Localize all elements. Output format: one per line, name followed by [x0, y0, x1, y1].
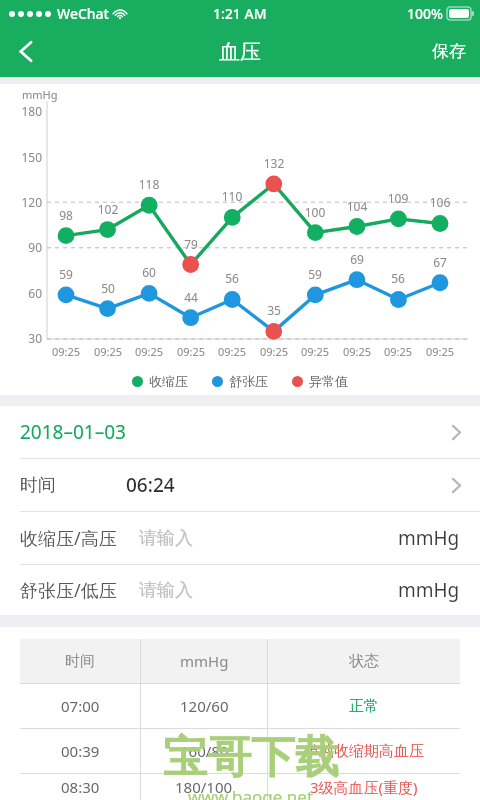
staticText: 98 [48, 207, 84, 223]
staticText: 60 [131, 264, 167, 280]
staticText: 60 [16, 285, 42, 301]
staticText: 100 [297, 204, 333, 220]
staticText: 44 [173, 289, 209, 305]
staticText: 106 [422, 194, 458, 210]
staticText: 180/100 [175, 777, 233, 797]
staticText: 59 [48, 266, 84, 282]
staticText: 09:25 [337, 344, 377, 359]
staticText: 收缩压/高压 [20, 526, 117, 551]
button[interactable]: 2018–01–03 [0, 406, 480, 458]
staticText: 59 [297, 266, 333, 282]
staticText: 舒张压/低压 [20, 578, 117, 603]
staticText: 120/60 [180, 696, 229, 716]
staticText: 120 [16, 194, 42, 210]
button[interactable]: 收缩压/高压 [0, 512, 480, 564]
staticText: 07:00 [61, 696, 100, 716]
staticText: 09:25 [88, 344, 128, 359]
button[interactable]: 时间 [0, 459, 480, 511]
staticText: 09:25 [420, 344, 460, 359]
staticText: www.baoge.net [188, 785, 314, 800]
staticText: 保存 [432, 41, 466, 62]
staticText: mmHg [398, 525, 460, 551]
button[interactable]: 保存 [418, 29, 480, 74]
staticText: 时间 [20, 474, 56, 497]
staticText: 血压 [219, 39, 261, 65]
button[interactable]: 00:39 [20, 729, 460, 773]
staticText: mmHg [398, 577, 460, 603]
staticText: 异常值 [309, 373, 348, 389]
staticText: 收缩压 [149, 373, 188, 389]
staticText: 09:25 [378, 344, 418, 359]
staticText: 56 [214, 270, 250, 286]
staticText: 舒张压 [229, 373, 268, 389]
button[interactable]: 07:00 [20, 684, 460, 728]
staticText: 79 [173, 236, 209, 252]
staticText: 67 [422, 254, 458, 270]
staticText: 102 [90, 201, 126, 217]
button[interactable]: 舒张压/低压 [0, 565, 480, 615]
staticText: 35 [256, 302, 292, 318]
staticText: 110 [214, 188, 250, 204]
staticText: 1:21 AM [213, 4, 267, 23]
staticText: 09:25 [254, 344, 294, 359]
staticText: WeChat [57, 4, 109, 23]
staticText: 118 [131, 176, 167, 192]
staticText: 正常 [349, 697, 379, 716]
staticText: 160/80 [180, 741, 229, 761]
staticText: 宝哥下载 [163, 730, 339, 785]
staticText: 状态 [349, 652, 379, 671]
staticText: 150 [16, 149, 42, 165]
staticText: mmHg [22, 87, 58, 102]
staticText: 132 [256, 155, 292, 171]
staticText: 00:39 [61, 741, 100, 761]
staticText: 3级高血压(重度) [310, 777, 418, 797]
staticText: 109 [380, 190, 416, 206]
staticText: 100% [407, 4, 443, 23]
staticText: 69 [339, 251, 375, 267]
staticText: 06:24 [126, 472, 175, 498]
staticText: 时间 [65, 652, 95, 671]
staticText: 请输入 [139, 527, 193, 550]
staticText: 180 [16, 103, 42, 119]
staticText: 2018–01–03 [20, 419, 126, 445]
staticText: 09:25 [212, 344, 252, 359]
staticText: 09:25 [295, 344, 335, 359]
staticText: 08:30 [61, 777, 100, 797]
staticText: mmHg [180, 651, 229, 671]
staticText: 56 [380, 270, 416, 286]
staticText: 单纯收缩期高血压 [304, 742, 424, 761]
staticText: 请输入 [139, 579, 193, 602]
staticText: 09:25 [129, 344, 169, 359]
staticText: 09:25 [171, 344, 211, 359]
staticText: 50 [90, 280, 126, 296]
staticText: 104 [339, 198, 375, 214]
staticText: 30 [16, 330, 42, 346]
button[interactable]: 08:30 [20, 774, 460, 800]
staticText: 90 [16, 239, 42, 255]
staticText: 09:25 [46, 344, 86, 359]
button[interactable]: Back [0, 26, 52, 77]
